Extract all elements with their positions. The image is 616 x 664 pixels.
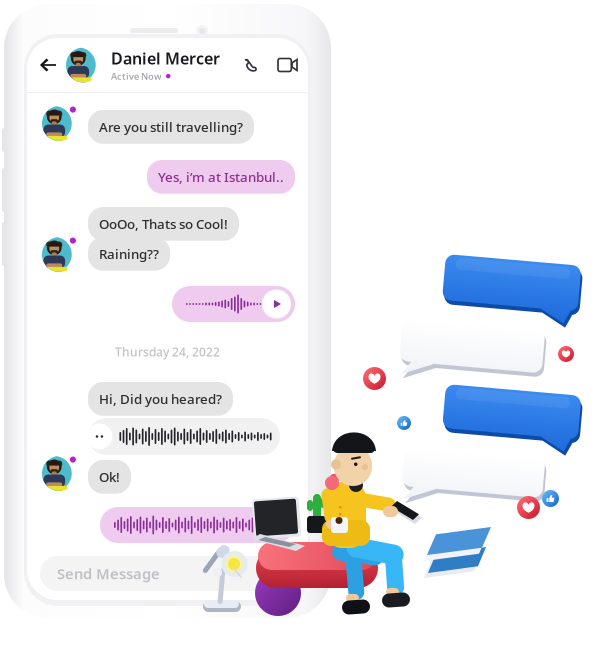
staticText: Ok! [99,468,120,486]
staticText: Raining?? [99,245,159,263]
staticText: Yes, i’m at Istanbul.. [158,168,284,186]
button[interactable]: Back [35,47,61,82]
button[interactable]: Video call [272,52,303,77]
staticText: Are you still travelling? [99,118,243,136]
staticText: Active Now [111,70,162,82]
button[interactable]: Call [238,51,263,78]
staticText: Send Message [57,564,160,583]
staticText: Thursday 24, 2022 [115,344,220,360]
staticText: Hi, Did you heared? [99,390,222,408]
staticText: Daniel Mercer [111,48,220,69]
button[interactable]: Send Message [40,556,295,591]
staticText: OoOo, Thats so Cool! [99,215,228,233]
